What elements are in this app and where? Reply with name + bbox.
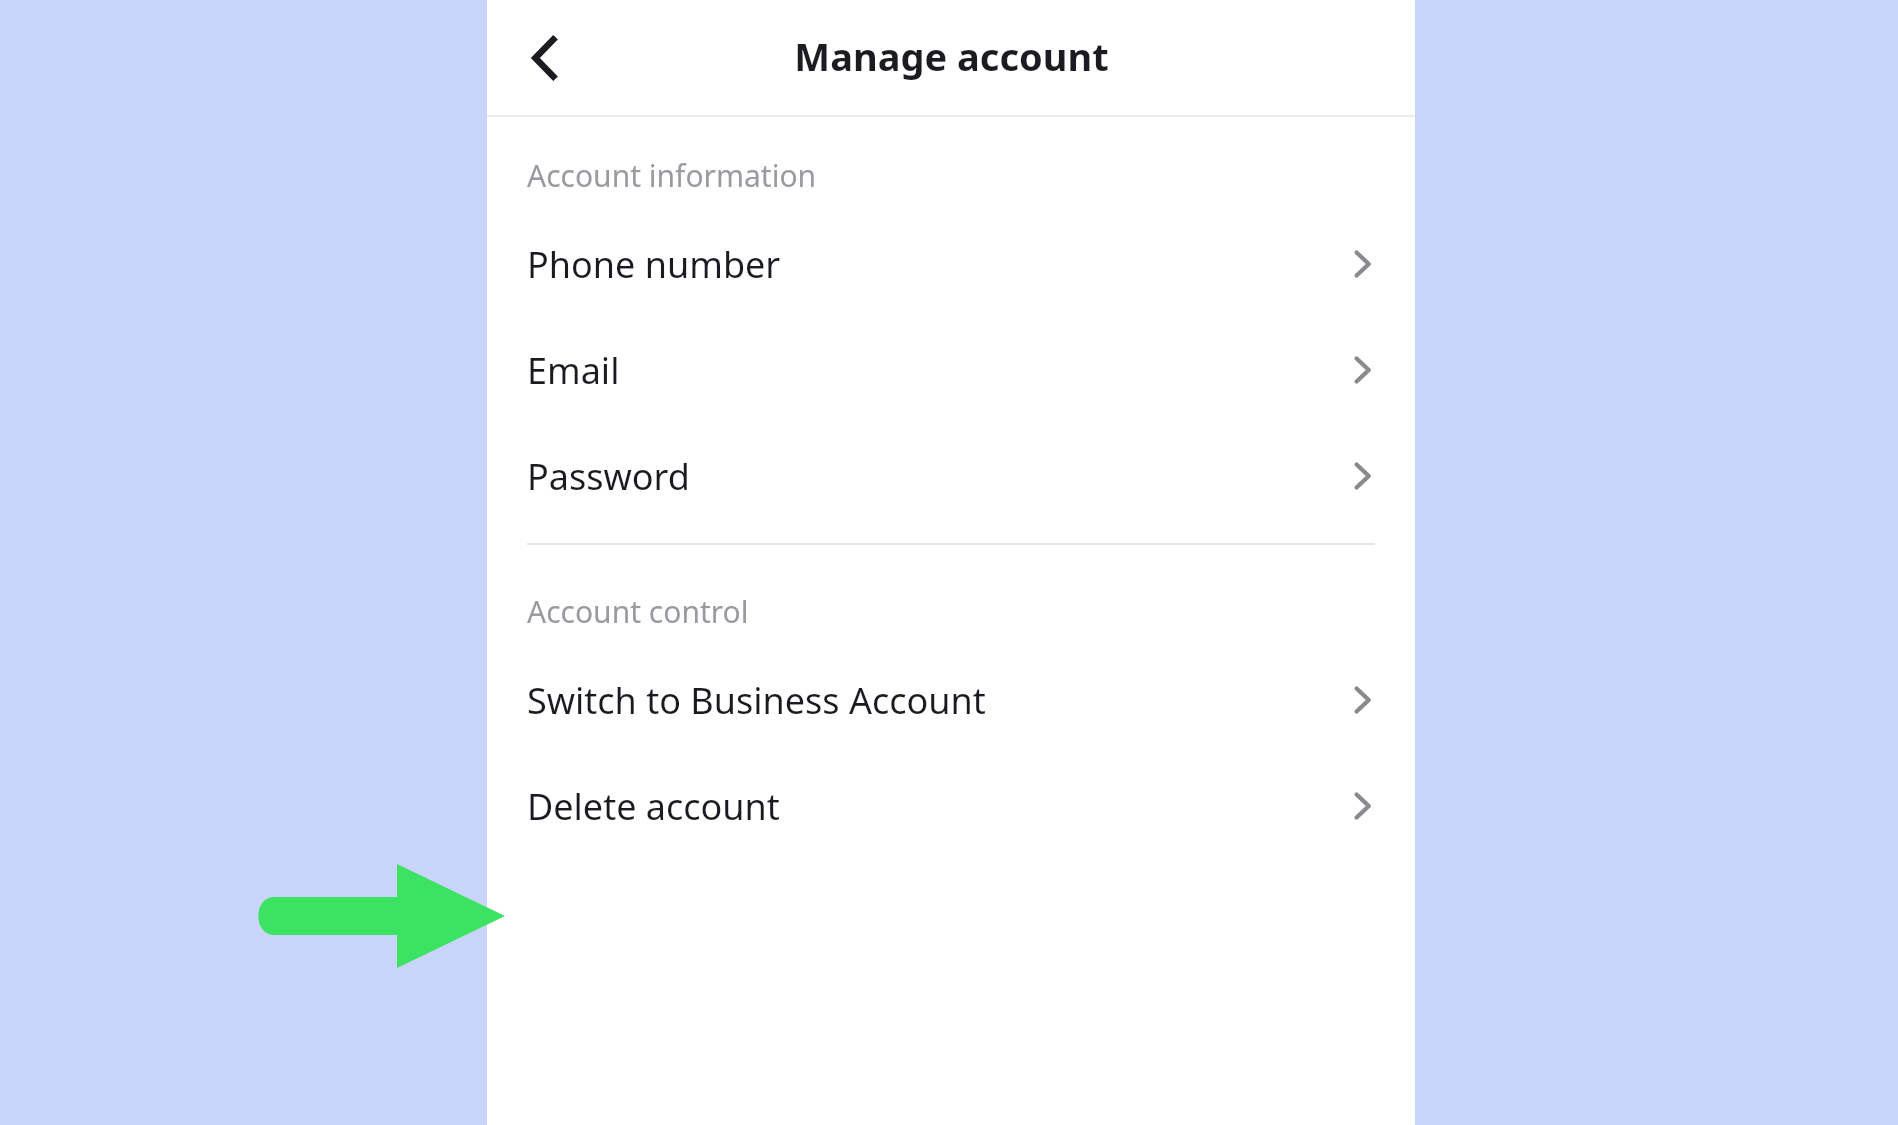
staticText: Password (527, 452, 1345, 501)
button[interactable]: Email (487, 317, 1415, 423)
staticText: Phone number (527, 240, 1345, 289)
staticText: Manage account (794, 30, 1109, 82)
staticText: Email (527, 346, 1345, 395)
button[interactable]: Back (501, 14, 589, 102)
staticText: Account control (527, 591, 749, 632)
staticText: Delete account (527, 782, 1345, 831)
button[interactable]: Phone number (487, 211, 1415, 317)
button[interactable]: Delete account (487, 753, 1415, 859)
button[interactable]: Password (487, 423, 1415, 529)
staticText: Account information (527, 155, 817, 196)
button[interactable]: Switch to Business Account (487, 647, 1415, 753)
staticText: Switch to Business Account (527, 676, 1345, 725)
